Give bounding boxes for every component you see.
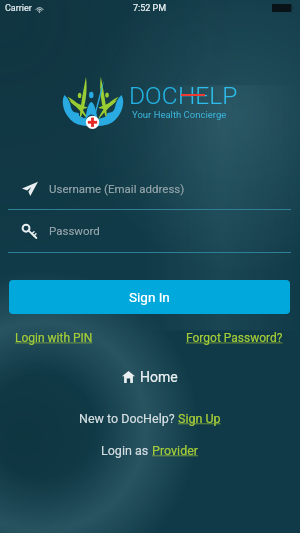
staticText: Password	[49, 224, 100, 237]
staticText: Provider	[152, 443, 199, 458]
button[interactable]: Login with PIN	[15, 331, 93, 345]
staticText: Carrier	[5, 3, 32, 14]
staticText: Home	[140, 369, 178, 385]
button[interactable]: Username (Email address)	[0, 176, 300, 210]
staticText: Sign In	[129, 289, 170, 305]
button[interactable]: Forgot Password?	[186, 331, 283, 345]
staticText: Login with PIN	[15, 331, 93, 345]
staticText: HELP	[178, 81, 238, 110]
staticText: Sign Up	[178, 411, 221, 426]
staticText: DOC	[129, 81, 178, 110]
button[interactable]: Sign Up	[178, 411, 221, 426]
staticText: Username (Email address)	[49, 182, 185, 195]
button[interactable]: Home	[0, 368, 300, 386]
staticText: Forgot Password?	[186, 331, 283, 345]
staticText: Login as	[101, 443, 152, 458]
button[interactable]: Provider	[152, 443, 199, 458]
staticText: Your Health Concierge	[132, 109, 227, 120]
button[interactable]: Sign In	[9, 280, 290, 314]
staticText: New to DocHelp?	[79, 411, 178, 426]
staticText: 7:52 PM	[133, 3, 167, 14]
button[interactable]: Password	[0, 218, 300, 253]
